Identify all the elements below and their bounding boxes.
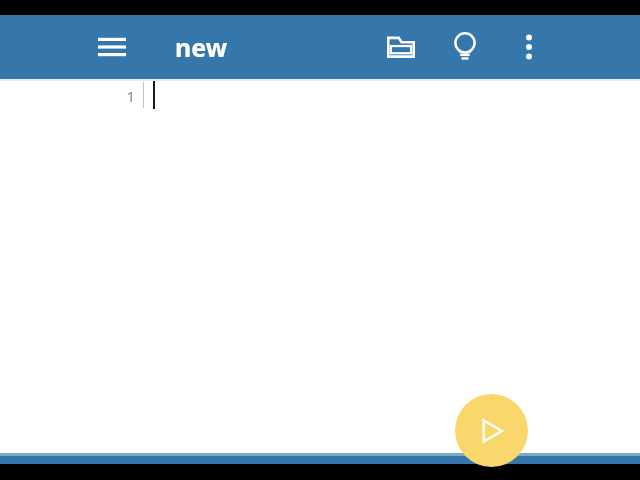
- button[interactable]: Open navigation drawer: [88, 15, 136, 79]
- button[interactable]: 1: [0, 79, 640, 453]
- button[interactable]: Run: [455, 394, 528, 467]
- button[interactable]: Open file: [377, 15, 425, 79]
- button[interactable]: Hints: [441, 15, 489, 79]
- button[interactable]: More options: [505, 15, 553, 79]
- staticText: 1: [126, 86, 135, 106]
- staticText: new: [175, 30, 228, 64]
